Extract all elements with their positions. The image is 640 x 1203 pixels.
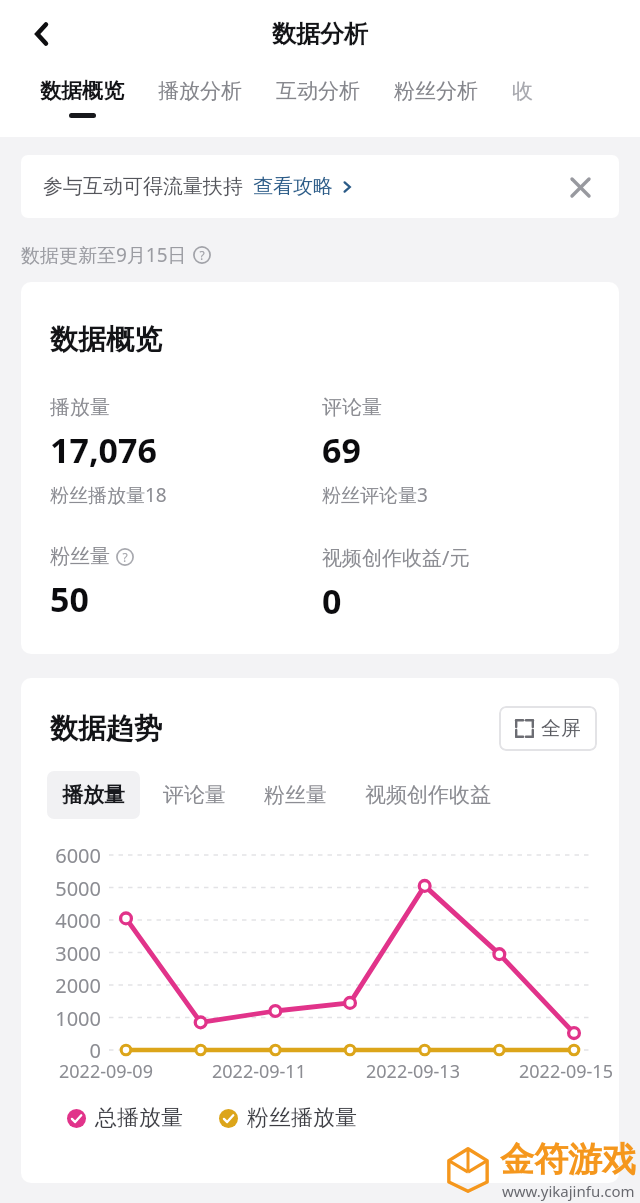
button[interactable]: 粉丝量 <box>249 771 342 819</box>
staticText: 金符游戏 <box>500 1138 636 1181</box>
staticText: ? <box>199 247 205 263</box>
staticText: 评论量 <box>322 395 382 420</box>
staticText: 粉丝量 <box>264 782 327 808</box>
button[interactable]: Close banner <box>557 164 603 210</box>
staticText: 6000 <box>21 842 101 869</box>
staticText: 参与互动可得流量扶持 <box>43 174 243 199</box>
button[interactable]: 视频创作收益 <box>350 771 506 819</box>
staticText: 评论量 <box>163 782 226 808</box>
staticText: 播放量 <box>50 395 110 420</box>
staticText: 数据概览 <box>40 78 124 104</box>
staticText: www.yikajinfu.com <box>502 1181 635 1201</box>
staticText: 粉丝分析 <box>394 78 478 104</box>
button[interactable]: 参与互动可得流量扶持 <box>21 155 619 218</box>
staticText: ? <box>122 549 128 565</box>
staticText: 3000 <box>21 940 101 967</box>
button[interactable]: Back <box>14 6 70 62</box>
staticText: 互动分析 <box>276 78 360 104</box>
staticText: 1000 <box>21 1005 101 1032</box>
staticText: 4000 <box>21 907 101 934</box>
staticText: 17,076 <box>50 427 157 473</box>
button[interactable]: 播放量 <box>47 771 140 819</box>
button[interactable]: 互动分析 <box>276 67 360 113</box>
staticText: 2000 <box>21 972 101 999</box>
button[interactable]: 粉丝量 <box>50 544 322 622</box>
staticText: 收 <box>512 78 533 104</box>
staticText: 2022-09-09 <box>59 1059 153 1084</box>
button[interactable]: 播放量 <box>50 395 322 508</box>
staticText: 数据概览 <box>50 322 162 357</box>
staticText: 数据分析 <box>272 19 368 49</box>
staticText: 播放分析 <box>158 78 242 104</box>
staticText: 0 <box>322 578 342 624</box>
button[interactable]: 粉丝播放量 <box>219 1104 357 1132</box>
staticText: 总播放量 <box>95 1104 183 1132</box>
staticText: 视频创作收益 <box>365 782 491 808</box>
button[interactable]: 全屏 <box>499 706 597 751</box>
staticText: 数据趋势 <box>50 711 162 746</box>
staticText: 粉丝量 <box>50 544 110 569</box>
staticText: 播放量 <box>62 782 125 808</box>
button[interactable]: 视频创作收益/元 <box>322 544 595 624</box>
button[interactable]: 播放分析 <box>158 67 242 113</box>
staticText: 全屏 <box>541 716 581 741</box>
staticText: 69 <box>322 427 361 473</box>
staticText: 视频创作收益/元 <box>322 544 470 571</box>
staticText: 2022-09-11 <box>212 1059 306 1084</box>
staticText: 2022-09-13 <box>366 1059 460 1084</box>
staticText: 粉丝播放量 <box>247 1104 357 1132</box>
button[interactable]: 收 <box>512 67 533 104</box>
button[interactable]: 总播放量 <box>67 1104 183 1132</box>
staticText: 粉丝播放量18 <box>50 482 167 508</box>
button[interactable]: 数据更新至9月15日 <box>21 242 211 268</box>
staticText: 0 <box>21 1037 101 1064</box>
button[interactable]: 评论量 <box>322 395 595 508</box>
staticText: 50 <box>50 576 89 622</box>
staticText: 查看攻略 <box>253 174 333 199</box>
button[interactable]: 评论量 <box>148 771 241 819</box>
staticText: 2022-09-15 <box>519 1059 613 1084</box>
staticText: 数据更新至9月15日 <box>21 242 187 268</box>
staticText: 粉丝评论量3 <box>322 482 428 508</box>
button[interactable]: 粉丝分析 <box>394 67 478 113</box>
button[interactable]: 数据概览 <box>40 67 124 118</box>
staticText: 5000 <box>21 875 101 902</box>
